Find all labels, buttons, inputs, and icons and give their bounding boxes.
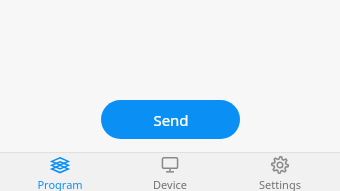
button[interactable]: Send [101,100,240,139]
staticText: Settings [259,177,301,191]
button[interactable]: Settings [230,152,330,191]
staticText: Device [153,177,187,191]
other: Device [161,156,179,174]
button[interactable]: Device [120,152,220,191]
button[interactable]: Program [10,152,110,191]
staticText: Send [153,110,189,130]
other: Program [51,156,69,174]
other: Settings [271,156,289,174]
staticText: Program [37,177,83,191]
